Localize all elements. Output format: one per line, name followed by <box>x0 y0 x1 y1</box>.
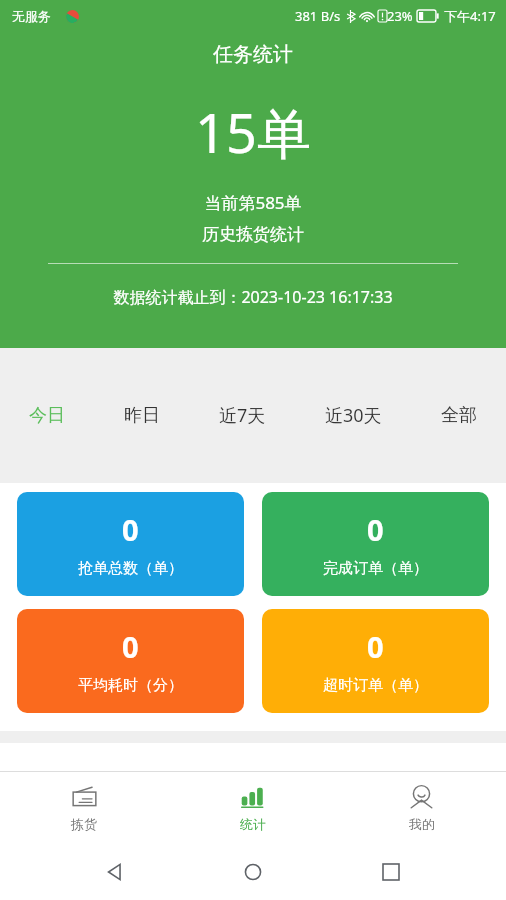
staticText: 0 <box>122 627 139 666</box>
button[interactable]: 历史拣货统计 <box>0 224 506 245</box>
button[interactable]: 0 <box>17 492 244 596</box>
staticText: 今日 <box>29 404 65 427</box>
button[interactable]: 今日 <box>21 396 73 435</box>
staticText: 381 B/s <box>295 7 341 25</box>
staticText: 0 <box>367 627 384 666</box>
staticText: 无服务 <box>12 8 51 24</box>
button[interactable]: 0 <box>262 492 489 596</box>
staticText: 完成订单（单） <box>323 559 428 578</box>
button[interactable]: Back <box>92 849 138 895</box>
button[interactable]: 统计 <box>168 778 337 838</box>
staticText: 我的 <box>409 816 435 832</box>
staticText: 统计 <box>240 816 266 832</box>
staticText: 全部 <box>441 404 477 427</box>
staticText: 15单 <box>0 95 506 169</box>
button[interactable]: 近30天 <box>317 395 390 436</box>
staticText: 抢单总数（单） <box>78 559 183 578</box>
staticText: 23% <box>387 7 413 25</box>
staticText: 0 <box>122 510 139 549</box>
staticText: 超时订单（单） <box>323 676 428 695</box>
button[interactable]: 昨日 <box>116 396 168 435</box>
button[interactable]: 0 <box>262 609 489 713</box>
button[interactable]: 0 <box>17 609 244 713</box>
staticText: 数据统计截止到：2023-10-23 16:17:33 <box>0 286 506 308</box>
staticText: 任务统计 <box>0 42 506 67</box>
button[interactable]: 全部 <box>433 396 485 435</box>
staticText: 近30天 <box>325 403 382 428</box>
staticText: 平均耗时（分） <box>78 676 183 695</box>
staticText: 昨日 <box>124 404 160 427</box>
button[interactable]: Recent apps <box>368 849 414 895</box>
staticText: 当前第585单 <box>0 191 506 214</box>
button[interactable]: 我的 <box>337 778 506 838</box>
button[interactable]: 近7天 <box>211 395 274 436</box>
staticText: 0 <box>367 510 384 549</box>
button[interactable]: 拣货 <box>0 778 168 838</box>
staticText: 近7天 <box>219 403 266 428</box>
button[interactable]: Home <box>230 849 276 895</box>
staticText: 拣货 <box>71 816 97 832</box>
staticText: 下午4:17 <box>444 7 496 25</box>
